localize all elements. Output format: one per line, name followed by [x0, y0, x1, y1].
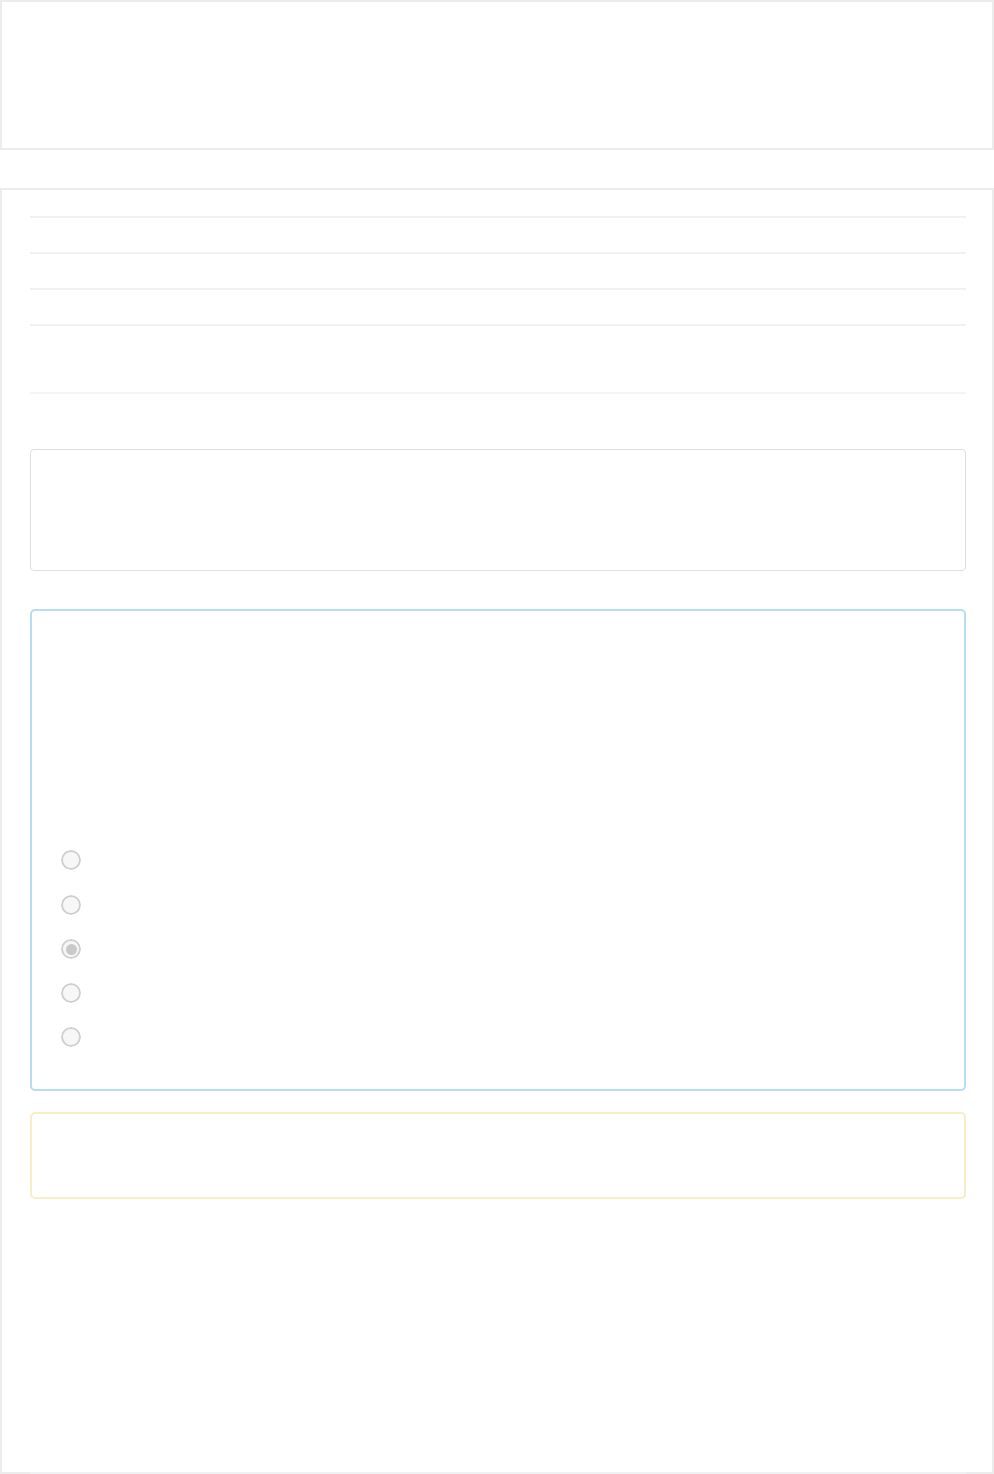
button[interactable]: Notice [30, 1112, 966, 1199]
button[interactable]: Option 3, selected [61, 939, 81, 959]
button[interactable]: Header [0, 0, 994, 150]
button[interactable]: Text field [30, 449, 966, 571]
button[interactable]: Option 5 [61, 1027, 81, 1047]
button[interactable]: Option 4 [61, 983, 81, 1003]
button[interactable]: Option 2 [61, 895, 81, 915]
button[interactable]: Option 1 [61, 850, 81, 870]
